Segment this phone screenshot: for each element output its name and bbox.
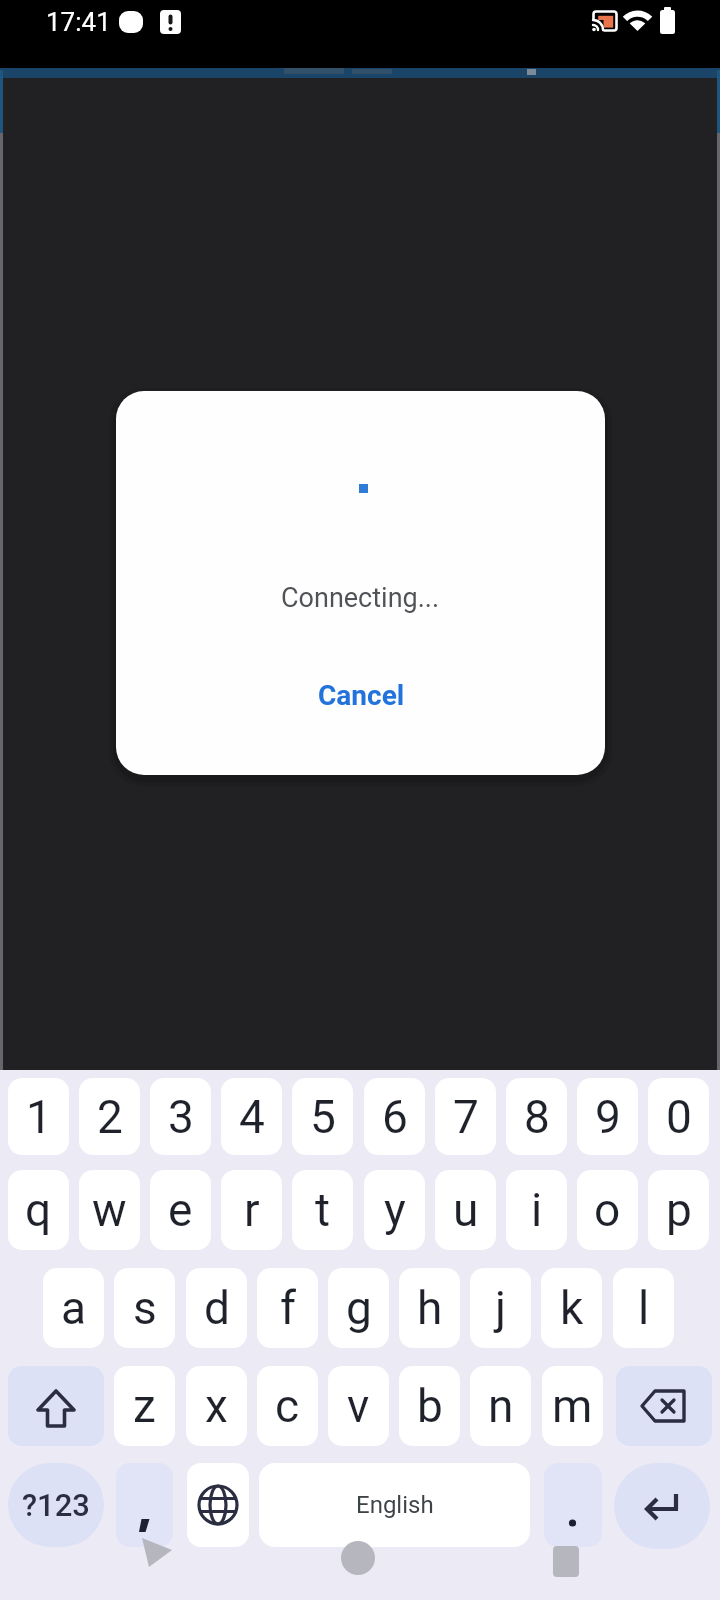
button[interactable]: o bbox=[577, 1170, 638, 1250]
button[interactable]: e bbox=[150, 1170, 211, 1250]
staticText: h bbox=[417, 1281, 443, 1335]
button[interactable]: r bbox=[221, 1170, 282, 1250]
staticText: q bbox=[25, 1183, 52, 1237]
staticText: r bbox=[244, 1183, 260, 1237]
button[interactable]: t bbox=[292, 1170, 353, 1250]
button[interactable]: i bbox=[506, 1170, 567, 1250]
staticText: b bbox=[417, 1379, 443, 1433]
staticText: 2 bbox=[97, 1090, 123, 1144]
button[interactable]: z bbox=[114, 1366, 175, 1446]
button[interactable]: v bbox=[328, 1366, 389, 1446]
staticText: u bbox=[453, 1183, 479, 1237]
button[interactable]: d bbox=[186, 1268, 247, 1348]
button[interactable]: s bbox=[114, 1268, 175, 1348]
staticText: t bbox=[315, 1183, 331, 1237]
staticText: m bbox=[552, 1379, 593, 1433]
button[interactable]: l bbox=[613, 1268, 674, 1348]
button[interactable]: w bbox=[79, 1170, 140, 1250]
staticText: z bbox=[133, 1379, 156, 1433]
button[interactable] bbox=[138, 1535, 178, 1571]
button[interactable] bbox=[616, 1366, 712, 1446]
staticText: f bbox=[280, 1281, 296, 1335]
button[interactable]: a bbox=[43, 1268, 104, 1348]
button[interactable]: 2 bbox=[79, 1078, 140, 1155]
button[interactable]: m bbox=[542, 1366, 603, 1446]
button[interactable] bbox=[338, 1538, 378, 1578]
button[interactable] bbox=[614, 1463, 710, 1549]
button[interactable]: p bbox=[648, 1170, 709, 1250]
staticText: a bbox=[61, 1281, 87, 1335]
staticText: i bbox=[531, 1183, 543, 1237]
staticText: n bbox=[488, 1379, 514, 1433]
staticText: g bbox=[346, 1281, 372, 1335]
button[interactable]: 6 bbox=[364, 1078, 425, 1155]
staticText: 1 bbox=[26, 1090, 52, 1144]
button[interactable]: 9 bbox=[577, 1078, 638, 1155]
staticText: d bbox=[204, 1281, 230, 1335]
button[interactable]: 3 bbox=[150, 1078, 211, 1155]
button[interactable]: b bbox=[399, 1366, 460, 1446]
button[interactable]: q bbox=[8, 1170, 69, 1250]
staticText: 8 bbox=[524, 1090, 550, 1144]
button[interactable]: 1 bbox=[8, 1078, 69, 1155]
staticText: w bbox=[92, 1183, 127, 1237]
button[interactable]: j bbox=[470, 1268, 531, 1348]
button[interactable]: h bbox=[399, 1268, 460, 1348]
staticText: 6 bbox=[382, 1090, 408, 1144]
button[interactable]: u bbox=[435, 1170, 496, 1250]
staticText: 9 bbox=[595, 1090, 621, 1144]
button[interactable]: 8 bbox=[506, 1078, 567, 1155]
button[interactable]: 5 bbox=[292, 1078, 353, 1155]
button[interactable]: 7 bbox=[435, 1078, 496, 1155]
button[interactable]: y bbox=[364, 1170, 425, 1250]
staticText: x bbox=[205, 1379, 228, 1433]
staticText: 5 bbox=[310, 1090, 336, 1144]
staticText: p bbox=[666, 1183, 692, 1237]
button[interactable]: English bbox=[259, 1463, 530, 1547]
button[interactable] bbox=[544, 1463, 602, 1547]
staticText: l bbox=[638, 1281, 650, 1335]
staticText: 0 bbox=[666, 1090, 692, 1144]
staticText: 3 bbox=[168, 1090, 194, 1144]
staticText: v bbox=[347, 1379, 370, 1433]
staticText: English bbox=[356, 1491, 434, 1519]
button[interactable]: 4 bbox=[221, 1078, 282, 1155]
staticText: 7 bbox=[453, 1090, 479, 1144]
staticText: s bbox=[133, 1281, 157, 1335]
button[interactable]: g bbox=[328, 1268, 389, 1348]
staticText: y bbox=[384, 1183, 406, 1237]
button[interactable]: 0 bbox=[648, 1078, 709, 1155]
button[interactable]: x bbox=[186, 1366, 247, 1446]
button[interactable] bbox=[8, 1366, 104, 1446]
staticText: Connecting... bbox=[281, 582, 440, 614]
button[interactable]: n bbox=[470, 1366, 531, 1446]
button[interactable]: ?123 bbox=[8, 1463, 104, 1547]
button[interactable]: c bbox=[257, 1366, 318, 1446]
staticText: o bbox=[594, 1183, 621, 1237]
button[interactable] bbox=[116, 1463, 173, 1547]
staticText: 4 bbox=[239, 1090, 265, 1144]
button[interactable]: k bbox=[541, 1268, 602, 1348]
button[interactable] bbox=[187, 1463, 249, 1547]
staticText: c bbox=[275, 1379, 300, 1433]
staticText: k bbox=[560, 1281, 584, 1335]
staticText: Cancel bbox=[318, 679, 405, 712]
staticText: ?123 bbox=[22, 1487, 90, 1523]
staticText: j bbox=[495, 1281, 507, 1335]
button[interactable] bbox=[548, 1541, 584, 1581]
button[interactable]: f bbox=[257, 1268, 318, 1348]
staticText: e bbox=[168, 1183, 193, 1237]
staticText: 17:41 bbox=[46, 7, 111, 37]
button[interactable]: Cancel bbox=[316, 673, 406, 717]
